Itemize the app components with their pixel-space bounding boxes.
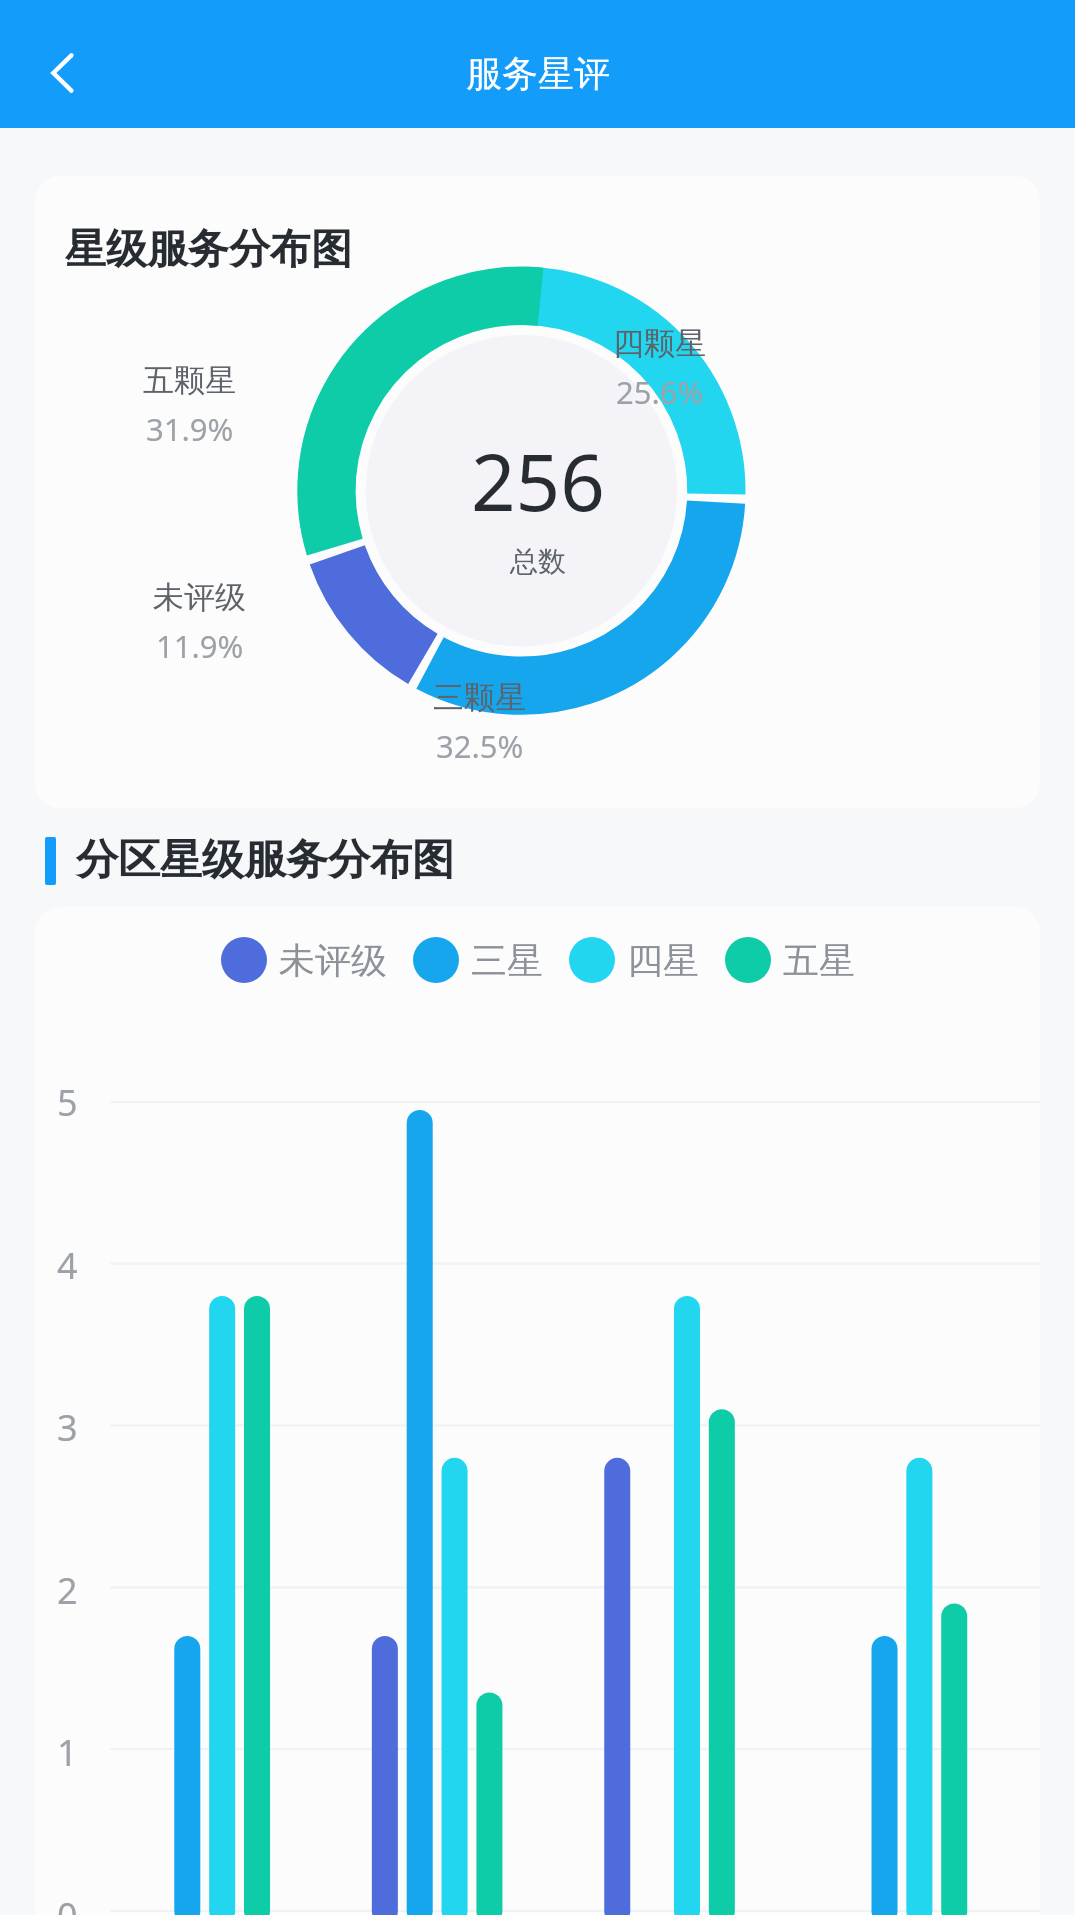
staticText: 未评级 (279, 938, 387, 983)
button[interactable]: 未评级 (221, 937, 387, 983)
staticText: 四星 (627, 938, 699, 983)
staticText: 五星 (783, 938, 855, 983)
staticText: 总数 (510, 544, 566, 579)
staticText: 3 (57, 1403, 78, 1452)
staticText: 25.6% (616, 371, 704, 413)
staticText: 32.5% (436, 725, 524, 767)
staticText: 11.9% (156, 625, 244, 667)
staticText: 三星 (471, 938, 543, 983)
staticText: 星级服务分布图 (65, 224, 352, 276)
staticText: 4 (57, 1241, 78, 1290)
staticText: 0 (57, 1891, 78, 1915)
staticText: 五颗星 (143, 361, 236, 400)
staticText: 分区星级服务分布图 (76, 834, 454, 887)
staticText: 未评级 (153, 578, 246, 617)
staticText: 服务星评 (466, 51, 610, 96)
staticText: 5 (57, 1078, 78, 1127)
button[interactable]: 五星 (725, 937, 855, 983)
staticText: 四颗星 (613, 324, 706, 363)
button[interactable]: Back (24, 34, 102, 112)
staticText: 31.9% (146, 408, 234, 450)
staticText: 2 (57, 1566, 78, 1615)
button[interactable]: 三星 (413, 937, 543, 983)
staticText: 256 (471, 428, 605, 534)
staticText: 1 (57, 1728, 78, 1777)
staticText: 三颗星 (433, 678, 526, 717)
button[interactable]: 四星 (569, 937, 699, 983)
